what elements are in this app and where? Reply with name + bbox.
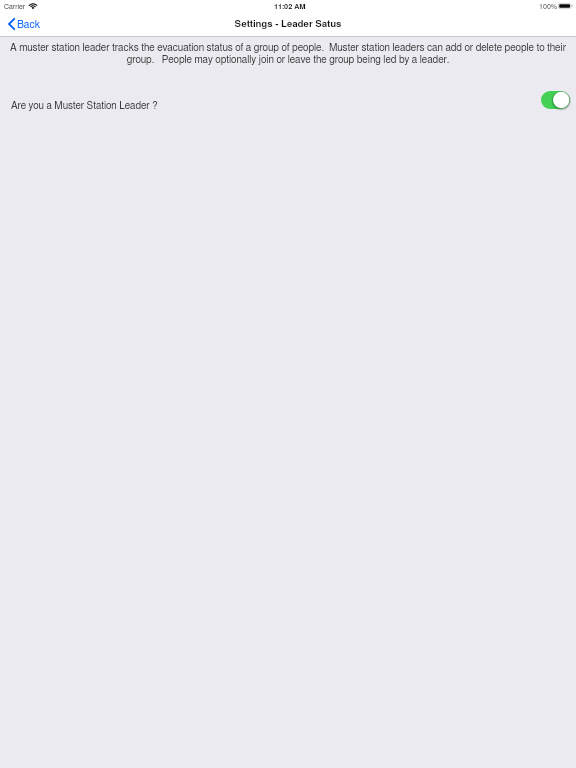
staticText: Settings - Leader Satus: [0, 19, 576, 29]
other: Battery full: [558, 3, 573, 9]
staticText: Are you a Muster Station Leader ?: [11, 101, 158, 111]
staticText: 11:02 AM: [274, 3, 306, 10]
other: Wi-Fi: [29, 3, 37, 9]
staticText: Carrier: [4, 3, 26, 10]
staticText: A muster station leader tracks the evacu…: [5, 43, 571, 65]
staticText: Back: [17, 20, 41, 30]
button[interactable]: Back: [0, 13, 48, 35]
button[interactable]: Are you a Muster Station Leader ?: [0, 86, 576, 114]
staticText: 100%: [539, 3, 558, 10]
button[interactable]: Muster Station Leader, on: [541, 91, 570, 109]
